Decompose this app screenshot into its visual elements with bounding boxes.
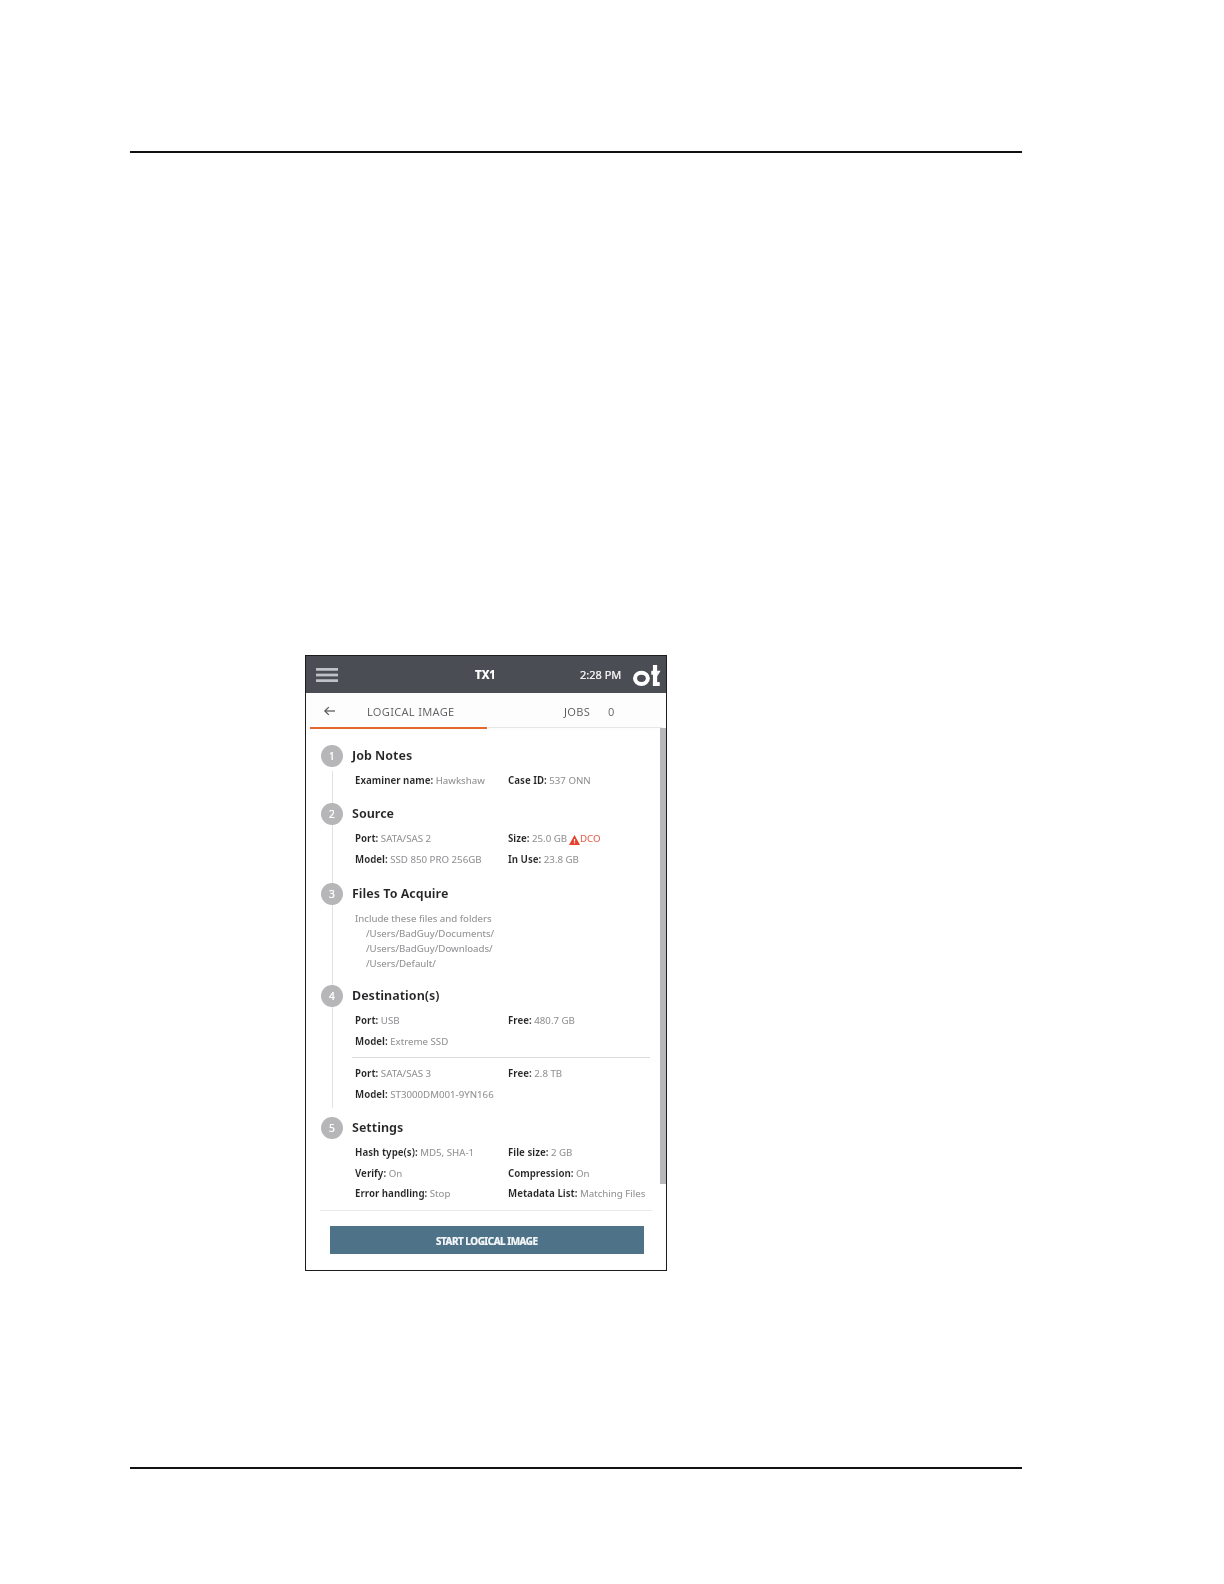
staticText: 4	[329, 989, 335, 1003]
staticText: /Users/BadGuy/Documents/	[366, 927, 495, 940]
staticText: Free: 480.7 GB	[508, 1014, 575, 1027]
staticText: Hash type(s): MD5, SHA-1	[355, 1146, 475, 1159]
button[interactable]	[310, 693, 488, 728]
button[interactable]: Menu	[307, 662, 346, 687]
staticText: /Users/BadGuy/Downloads/	[366, 942, 493, 955]
staticText: 2	[329, 807, 335, 821]
staticText: Compression: On	[508, 1167, 590, 1180]
staticText: Include these files and folders	[355, 912, 492, 925]
staticText: Settings	[352, 1119, 404, 1136]
staticText: START LOGICAL IMAGE	[436, 1234, 538, 1247]
staticText: Port: SATA/SAS 2	[355, 832, 432, 845]
staticText: 0	[608, 704, 615, 719]
staticText: Job Notes	[352, 747, 413, 764]
button[interactable]: Back	[318, 701, 340, 721]
staticText: 5	[329, 1121, 335, 1135]
staticText: Source	[352, 805, 395, 822]
staticText: Error handling: Stop	[355, 1187, 451, 1200]
staticText: TX1	[475, 667, 496, 683]
staticText: 3	[329, 887, 335, 901]
staticText: Verify: On	[355, 1167, 403, 1180]
staticText: File size: 2 GB	[508, 1146, 573, 1159]
button[interactable]: START LOGICAL IMAGE	[330, 1226, 644, 1254]
staticText: Port: SATA/SAS 3	[355, 1067, 432, 1080]
staticText: JOBS	[564, 704, 591, 719]
button[interactable]	[546, 693, 656, 728]
staticText: 2:28 PM	[580, 667, 622, 682]
staticText: Model: Extreme SSD	[355, 1035, 449, 1048]
staticText: Size: 25.0 GB	[508, 832, 568, 845]
staticText: Case ID: 537 ONN	[508, 774, 591, 787]
staticText: Examiner name: Hawkshaw	[355, 774, 485, 787]
staticText: Free: 2.8 TB	[508, 1067, 563, 1080]
staticText: Model: SSD 850 PRO 256GB	[355, 853, 482, 866]
staticText: LOGICAL IMAGE	[367, 704, 455, 719]
staticText: Model: ST3000DM001-9YN166	[355, 1088, 494, 1101]
staticText: Files To Acquire	[352, 885, 449, 902]
staticText: DCO	[580, 832, 601, 845]
staticText: 1	[329, 749, 335, 763]
staticText: Metadata List: Matching Files	[508, 1187, 646, 1200]
staticText: In Use: 23.8 GB	[508, 853, 579, 866]
staticText: /Users/Default/	[366, 957, 436, 970]
staticText: Port: USB	[355, 1014, 400, 1027]
staticText: Destination(s)	[352, 987, 440, 1004]
